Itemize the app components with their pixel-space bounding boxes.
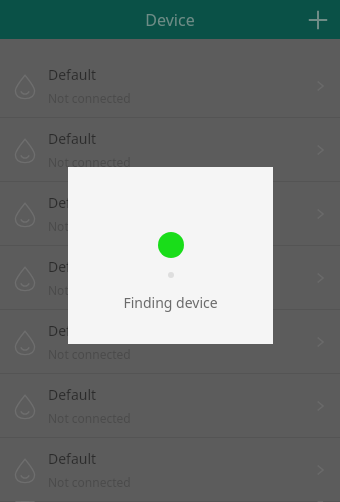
staticText: Not connected: [48, 154, 131, 170]
staticText: Not connected: [48, 474, 131, 490]
staticText: Default: [48, 129, 97, 148]
staticText: Device: [145, 9, 195, 31]
staticText: Finding device: [123, 293, 218, 312]
staticText: Default: [48, 257, 97, 276]
staticText: Not connected: [48, 410, 131, 426]
button[interactable]: Default: [0, 54, 340, 118]
staticText: Default: [48, 65, 97, 84]
staticText: Default: [48, 321, 97, 340]
button[interactable]: Default: [0, 246, 340, 310]
staticText: Default: [48, 193, 97, 212]
staticText: Default: [48, 449, 97, 468]
button[interactable]: Default: [0, 182, 340, 246]
staticText: Not connected: [48, 346, 131, 362]
staticText: Default: [48, 385, 97, 404]
button[interactable]: Default: [0, 118, 340, 182]
button[interactable]: Default: [0, 438, 340, 502]
staticText: Not connected: [48, 282, 131, 298]
button[interactable]: Default: [0, 374, 340, 438]
staticText: Not connected: [48, 90, 131, 106]
staticText: Not connected: [48, 218, 131, 234]
button[interactable]: Default: [0, 310, 340, 374]
button[interactable]: Add device: [296, 0, 340, 39]
